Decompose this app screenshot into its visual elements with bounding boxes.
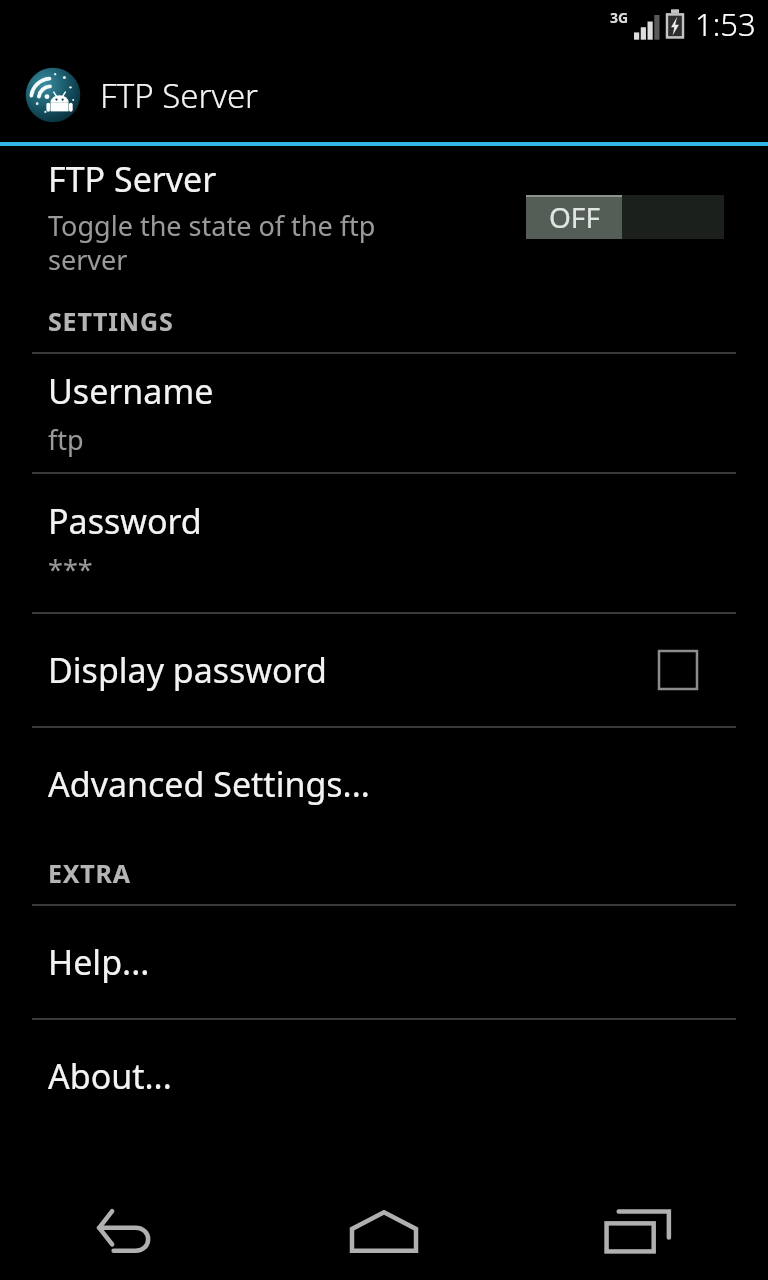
button[interactable]: Recent apps [512, 1184, 768, 1280]
staticText: Advanced Settings... [48, 761, 370, 807]
button[interactable]: FTP Server [0, 48, 768, 142]
staticText: EXTRA [48, 856, 131, 890]
staticText: OFF [549, 198, 600, 236]
staticText: Help... [48, 939, 150, 985]
button[interactable]: FTP server toggle, off [526, 195, 724, 239]
staticText: ftp [48, 421, 84, 458]
button[interactable]: About... [0, 1020, 768, 1132]
button[interactable]: Display password [0, 614, 768, 726]
button[interactable]: Back [0, 1184, 256, 1280]
button[interactable]: Password [0, 474, 768, 612]
staticText: *** [48, 551, 93, 588]
staticText: SETTINGS [48, 304, 174, 338]
staticText: Username [48, 368, 214, 414]
staticText: Toggle the state of the ftp server [48, 207, 376, 278]
button[interactable]: Advanced Settings... [0, 728, 768, 840]
staticText: FTP Server [100, 73, 259, 118]
button[interactable]: Help... [0, 906, 768, 1018]
button[interactable]: Username [0, 354, 768, 472]
staticText: 1:53 [695, 3, 756, 45]
staticText: 3G [610, 8, 629, 27]
button[interactable]: Display password, unchecked [650, 642, 706, 698]
staticText: FTP Server [48, 156, 217, 202]
staticText: Password [48, 498, 202, 544]
button[interactable]: Home [256, 1184, 512, 1280]
button[interactable]: FTP Server [0, 146, 768, 288]
staticText: Display password [48, 647, 327, 693]
staticText: About... [48, 1053, 172, 1099]
